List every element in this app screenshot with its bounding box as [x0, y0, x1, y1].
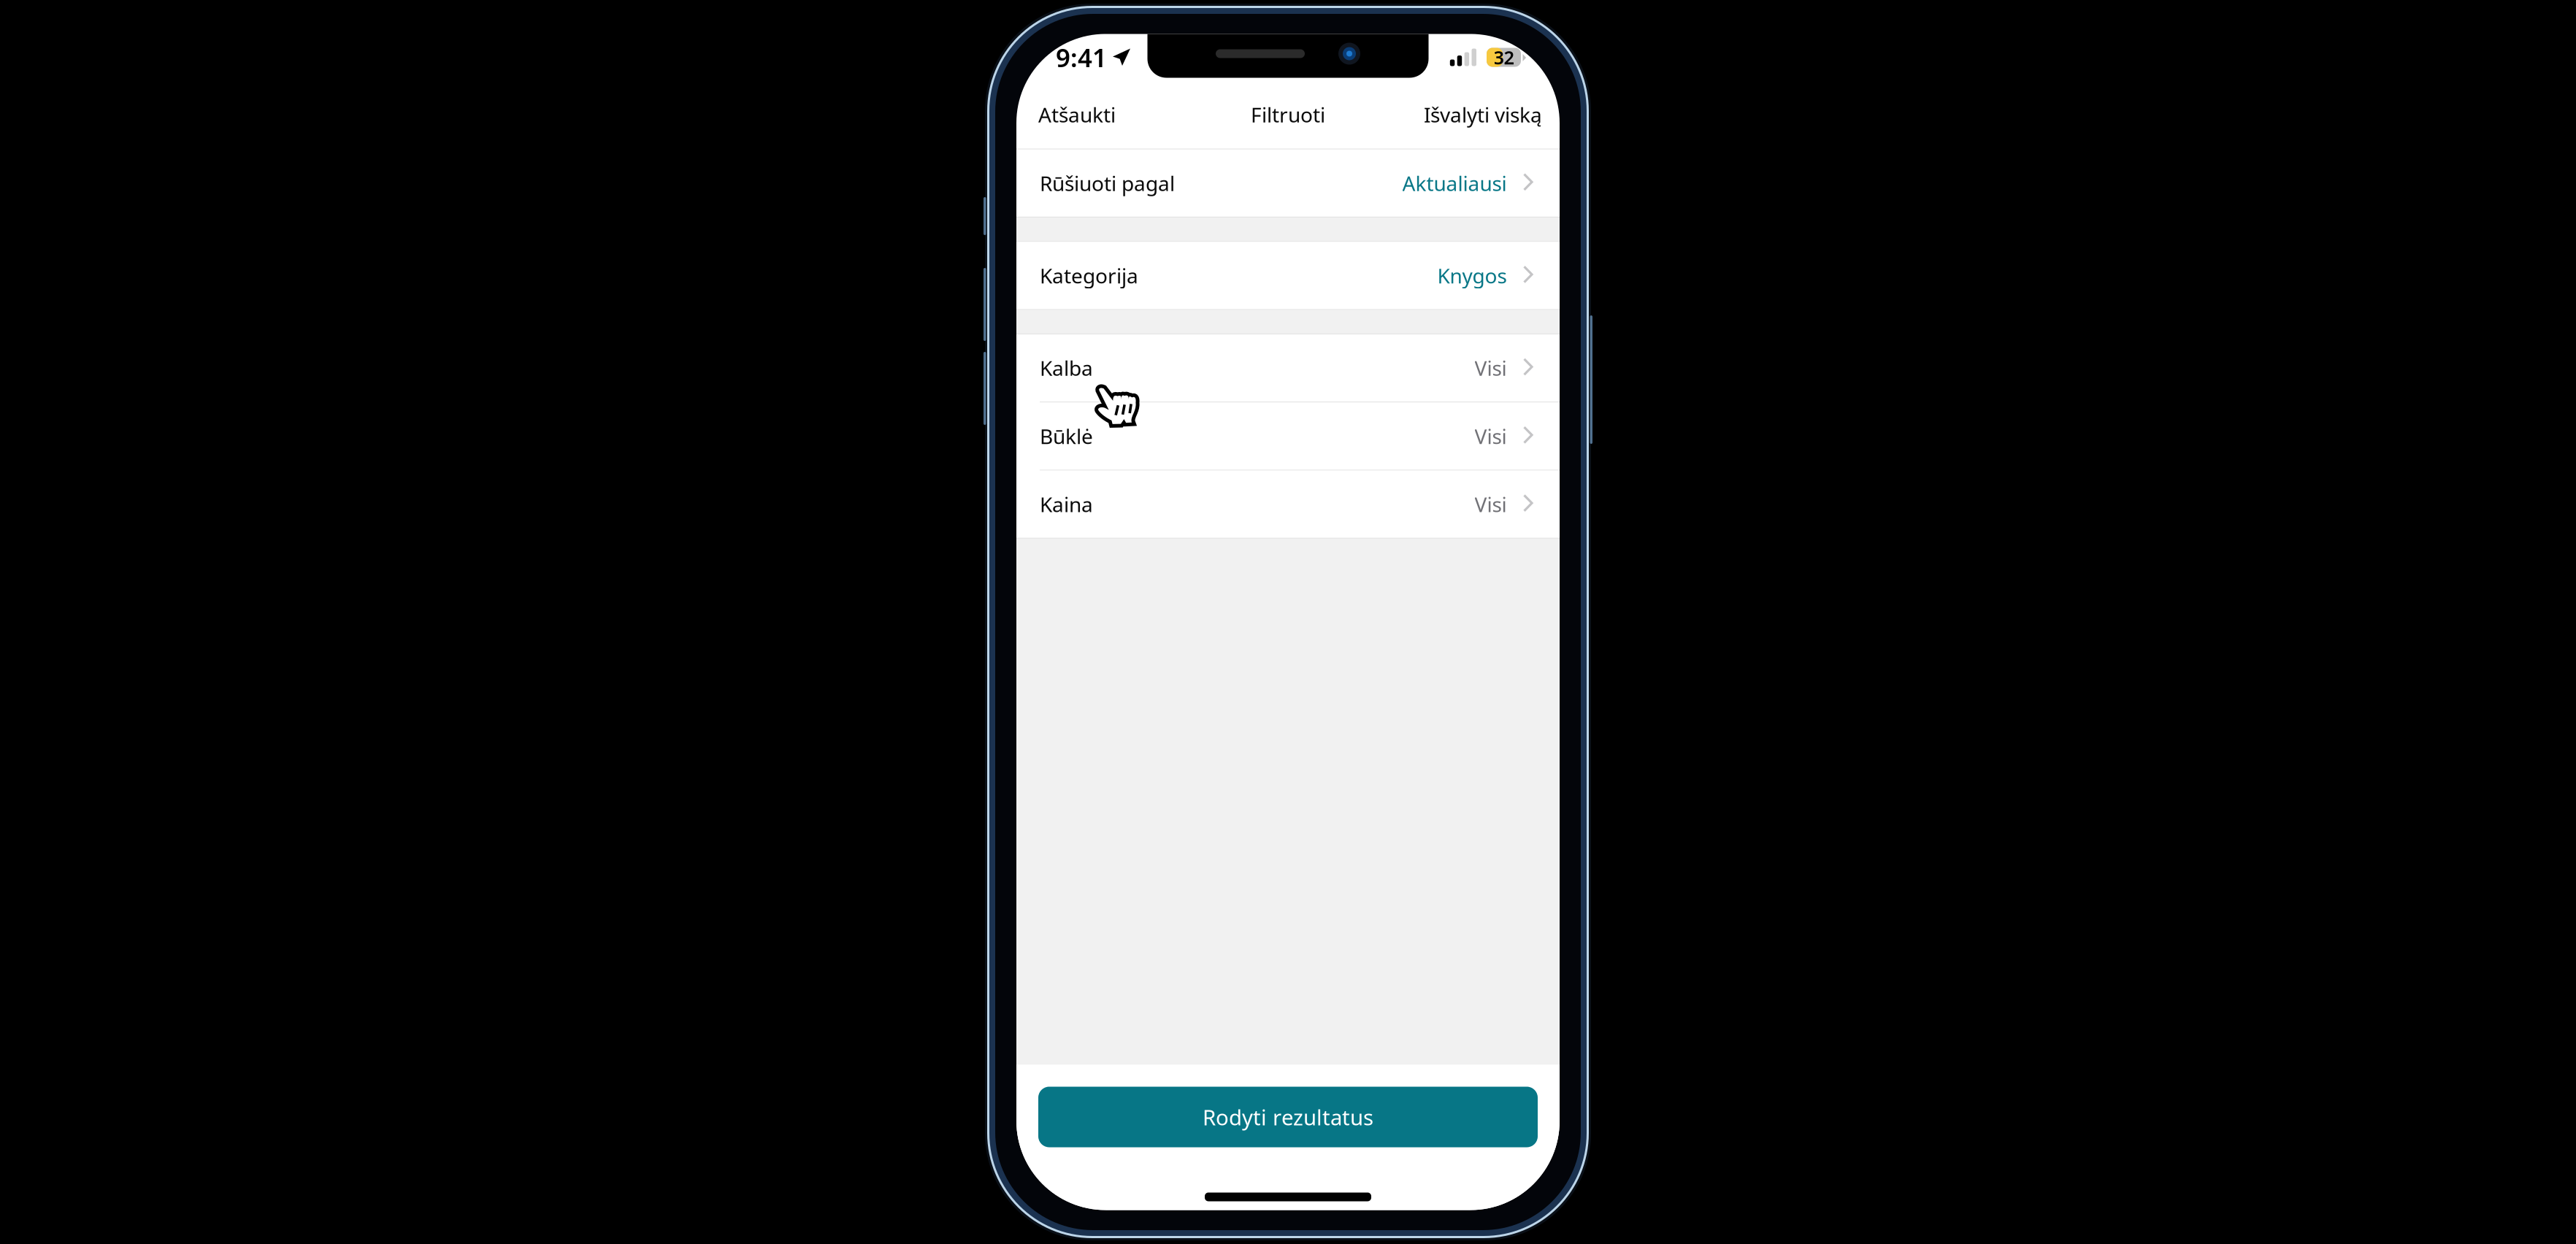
staticText: Filtruoti [1251, 101, 1325, 128]
staticText: Rodyti rezultatus [1203, 1103, 1373, 1131]
staticText: Knygos [1437, 262, 1507, 289]
staticText: Kategorija [1040, 262, 1138, 289]
button[interactable]: Kaina [1016, 471, 1560, 538]
staticText: Kaina [1040, 491, 1093, 518]
staticText: Rūšiuoti pagal [1040, 170, 1175, 197]
button[interactable]: Rodyti rezultatus [1038, 1087, 1538, 1147]
staticText: Aktualiausi [1402, 170, 1507, 197]
staticText: 9:41 [1056, 41, 1107, 74]
button[interactable]: Rūšiuoti pagal [1016, 150, 1560, 217]
staticText: Visi [1475, 354, 1507, 382]
staticText: Atšaukti [1038, 101, 1116, 128]
staticText: Išvalyti viską [1424, 101, 1542, 128]
staticText: Visi [1475, 422, 1507, 450]
button[interactable]: Atšaukti [1016, 81, 1138, 149]
button[interactable]: Kategorija [1016, 242, 1560, 309]
button[interactable]: Kalba [1016, 334, 1560, 402]
button[interactable]: Būklė [1016, 402, 1560, 470]
button[interactable]: Išvalyti viską [1406, 81, 1560, 149]
staticText: Visi [1475, 491, 1507, 518]
staticText: Būklė [1040, 422, 1093, 450]
staticText: Kalba [1040, 354, 1093, 382]
staticText: 32 [1494, 45, 1514, 70]
